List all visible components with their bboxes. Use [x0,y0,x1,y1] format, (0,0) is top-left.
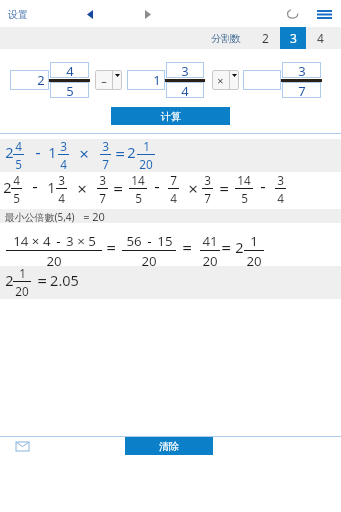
staticText: 7 [204,190,211,206]
staticText: × [77,177,87,200]
button[interactable]: 7 [282,82,321,98]
staticText: 5 [66,82,74,98]
staticText: 4 [277,190,284,206]
button[interactable]: Undo [281,3,303,25]
staticText: = [115,142,125,165]
staticText: 20 [141,252,157,270]
staticText: 4 [170,190,177,206]
staticText: 7 [298,82,306,98]
button[interactable]: 1 [127,70,165,90]
button[interactable]: 4 [50,62,89,78]
staticText: 5 [13,190,20,206]
staticText: 3 [60,138,67,154]
staticText: = [221,236,231,259]
staticText: 7 [170,172,177,188]
button[interactable]: Next [138,4,158,24]
staticText: 2 [37,71,45,89]
staticText: 1 [153,71,161,89]
staticText: 3 [290,30,297,46]
button[interactable] [0,139,341,172]
staticText: 20 [139,156,153,172]
button[interactable]: 4 [166,82,204,98]
staticText: 分割数 [211,32,241,45]
staticText: 20 [15,283,29,299]
button[interactable]: 3 [166,62,204,78]
staticText: 14 × 4 - 3 × 5 [13,232,96,250]
staticText: 14 [237,172,251,188]
staticText: - [32,174,38,197]
staticText: 3 [181,62,189,78]
button[interactable]: Mail [13,437,31,455]
staticText: 2 [5,270,14,290]
staticText: 1 [19,265,26,281]
staticText: – [101,73,107,88]
staticText: 4 [13,172,20,188]
button[interactable]: 3 [282,62,321,78]
staticText: 4 [15,138,22,154]
staticText: × [188,177,198,200]
staticText: 4 [181,82,189,98]
button[interactable]: 4 [308,27,333,49]
staticText: 4 [60,156,67,172]
staticText: - [154,174,160,197]
staticText: 4 [317,30,324,46]
button[interactable]: 计算 [111,107,230,125]
staticText: × [217,73,224,88]
staticText: 2 [262,30,269,46]
staticText: 计算 [161,110,181,123]
staticText: 设置 [8,8,28,21]
staticText: 20 [46,252,62,270]
staticText: 4 [66,62,74,78]
staticText: 1 [250,232,258,250]
staticText: 3 [102,138,109,154]
staticText: 41 [202,232,218,250]
staticText: 20 [246,252,262,270]
staticText: 20 [202,252,218,270]
staticText: 3 [99,172,106,188]
button[interactable] [0,266,341,299]
staticText: 5 [241,190,248,206]
staticText: 3 [277,172,284,188]
staticText: - [260,174,266,197]
staticText: 3 [58,172,65,188]
staticText: 清除 [159,440,179,453]
button[interactable] [0,223,341,266]
staticText: 1 [47,177,56,197]
button[interactable] [0,209,341,223]
staticText: 56 - 15 [126,232,173,250]
button[interactable]: 3 [280,27,306,49]
button[interactable]: Previous [80,4,100,24]
staticText: = 20 [83,209,105,224]
staticText: - [35,140,41,163]
staticText: = [113,177,123,200]
staticText: = [37,269,47,292]
staticText: = [106,236,116,259]
staticText: = [182,236,192,259]
staticText: 2 [127,142,136,162]
staticText: 2 [235,237,244,257]
staticText: 7 [102,156,109,172]
button[interactable]: Menu [312,2,336,26]
staticText: 14 [131,172,145,188]
staticText: 7 [99,190,106,206]
button[interactable]: 5 [50,82,89,98]
staticText: 5 [15,156,22,172]
button[interactable]: 清除 [125,437,213,455]
staticText: 4 [58,190,65,206]
staticText: 2.05 [50,270,79,290]
button[interactable]: 2 [10,70,49,90]
staticText: 2 [3,177,12,197]
button[interactable]: 2 [253,27,278,49]
button[interactable]: 设置 [8,3,28,25]
button[interactable] [243,70,281,90]
button[interactable]: Operator [212,70,239,90]
staticText: 5 [135,190,142,206]
staticText: = [219,177,229,200]
button[interactable]: Operator [95,70,122,90]
staticText: 1 [48,142,57,162]
button[interactable] [0,172,341,209]
staticText: 2 [5,142,14,162]
staticText: 3 [204,172,211,188]
staticText: × [79,142,89,165]
staticText: 3 [298,62,306,78]
